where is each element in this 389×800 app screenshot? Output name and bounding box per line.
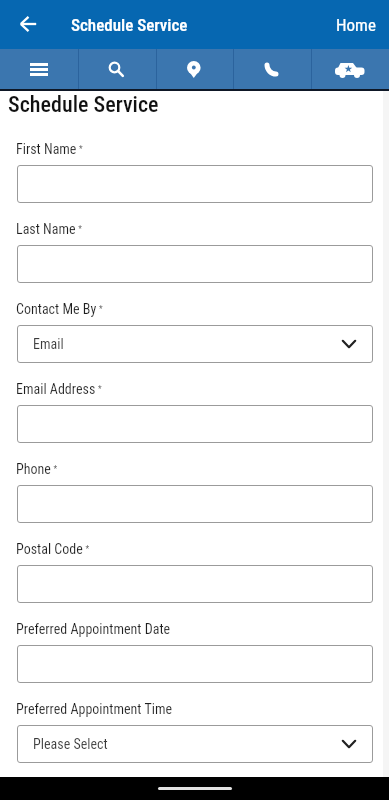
button[interactable] [77, 49, 155, 89]
staticText: Schedule Service [8, 92, 159, 118]
staticText: Last Name * [16, 221, 82, 237]
staticText: Postal Code * [16, 541, 90, 557]
staticText: Email Address * [16, 381, 102, 397]
button[interactable] [233, 49, 311, 89]
button[interactable] [0, 49, 77, 89]
button[interactable] [17, 405, 373, 443]
staticText: Schedule Service [71, 15, 188, 35]
button[interactable] [17, 165, 373, 203]
button[interactable] [17, 565, 373, 603]
button[interactable] [17, 245, 373, 283]
button[interactable] [311, 49, 389, 89]
staticText: Preferred Appointment Time [16, 701, 173, 717]
button[interactable] [8, 4, 48, 44]
staticText: Home [336, 15, 376, 35]
button[interactable] [17, 645, 373, 683]
staticText: Contact Me By * [16, 301, 103, 317]
staticText: Preferred Appointment Date [16, 621, 171, 637]
button[interactable]: Please Select [17, 725, 373, 763]
staticText: Please Select [33, 736, 108, 752]
staticText: First Name * [16, 141, 83, 157]
button[interactable] [17, 485, 373, 523]
button[interactable]: Email [17, 325, 373, 363]
staticText: Email [33, 336, 64, 352]
button[interactable]: Home [336, 0, 389, 49]
staticText: Phone * [16, 461, 58, 477]
button[interactable] [155, 49, 233, 89]
